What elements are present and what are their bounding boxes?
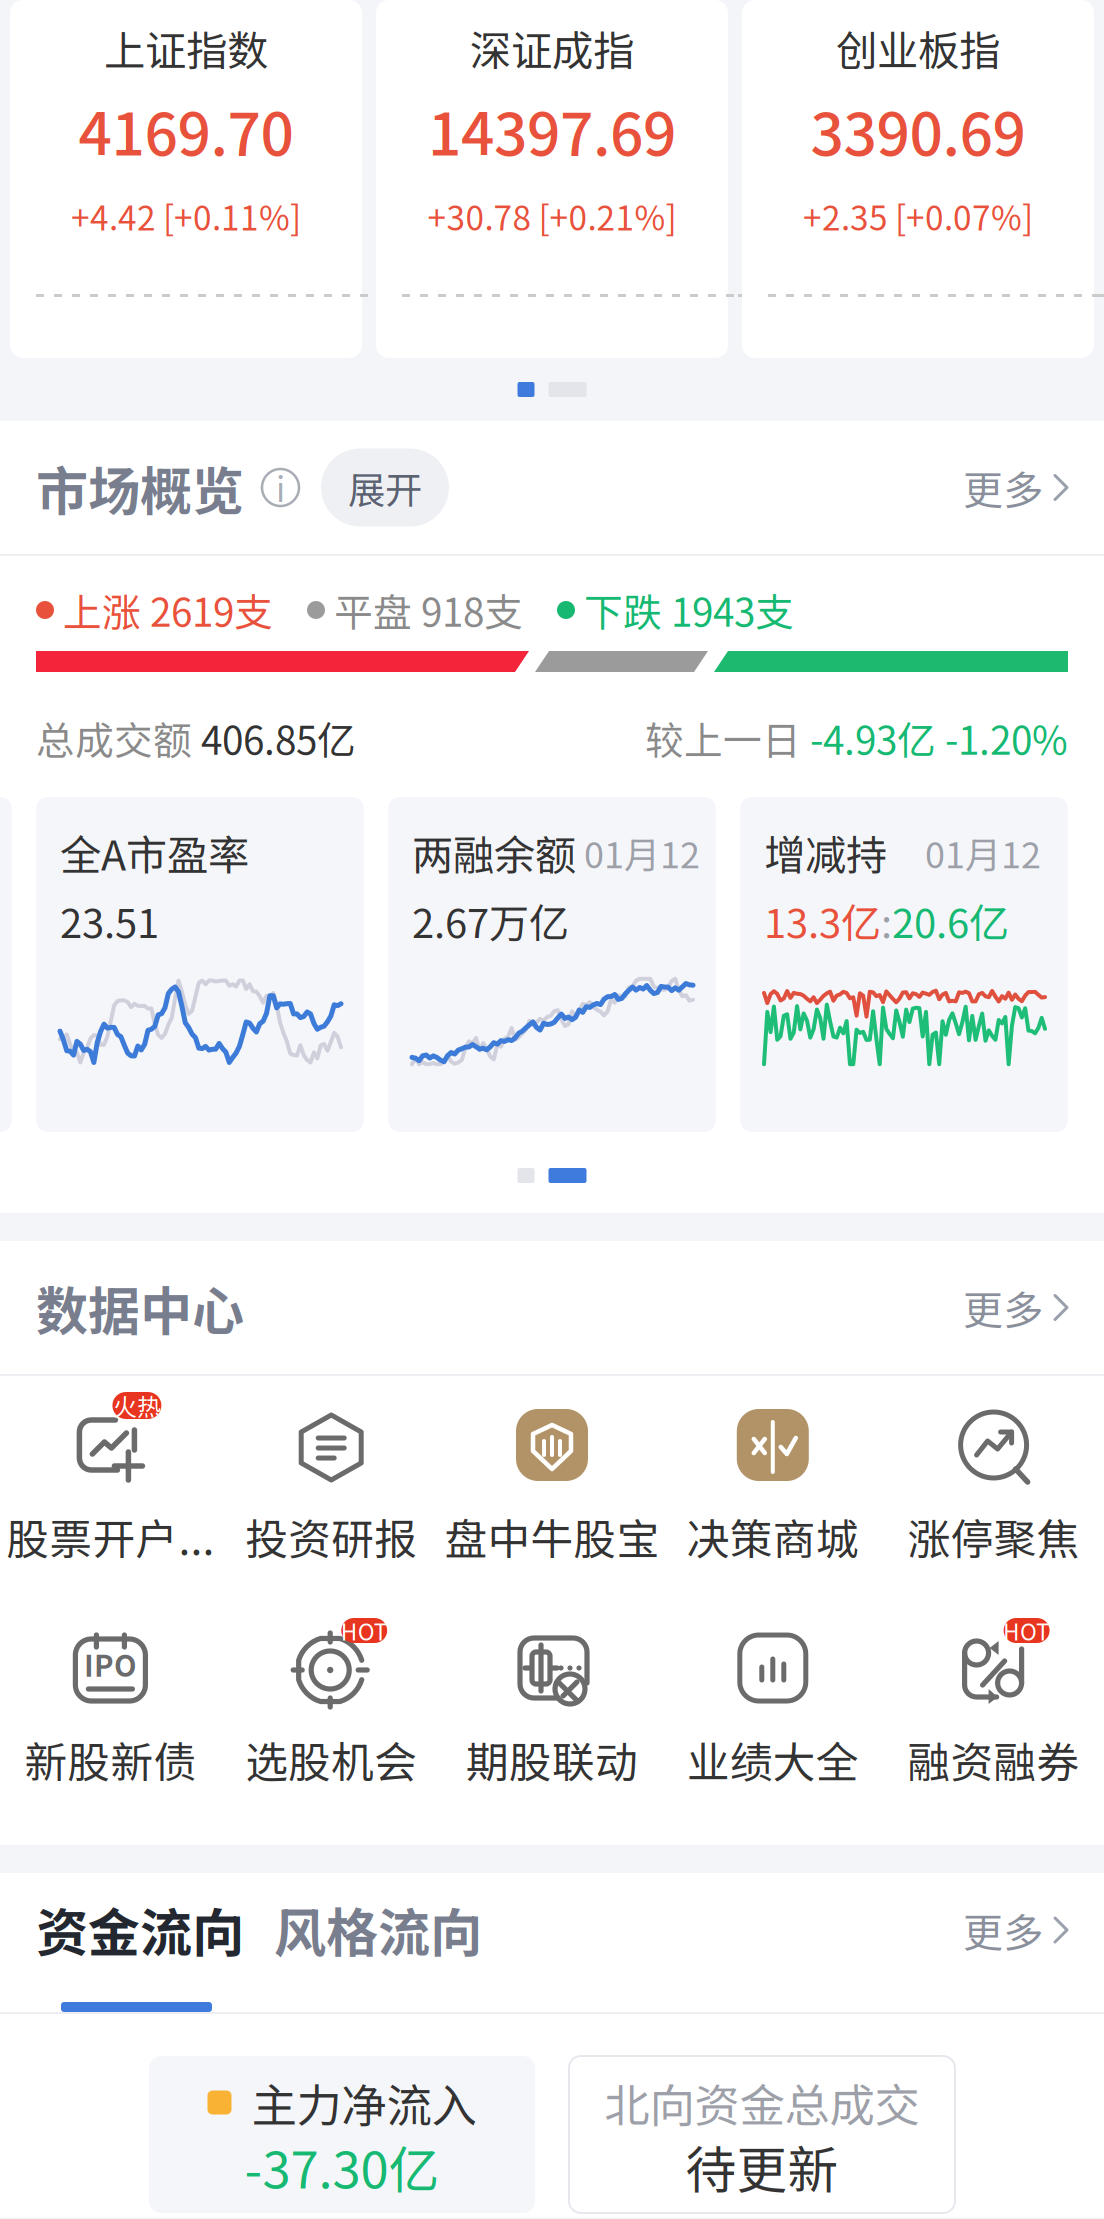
staticText: 投资研报 — [245, 1506, 417, 1567]
staticText: 深证成指 — [470, 18, 634, 78]
staticText: 全A市盈率 — [60, 823, 249, 882]
button[interactable]: 风格流向 — [244, 1901, 482, 1957]
staticText: 资金流向 — [36, 1891, 244, 1967]
button[interactable]: 更多 — [963, 458, 1070, 516]
button[interactable]: 涨停聚焦 — [883, 1408, 1104, 1559]
button[interactable]: 决策商城 — [662, 1408, 883, 1559]
staticText: 增减持 — [764, 823, 887, 882]
staticText: 23.51 — [60, 891, 159, 949]
staticText: HOT — [1003, 1614, 1050, 1647]
staticText: 上涨 2619支 — [54, 582, 273, 638]
staticText: 4169.70 — [78, 87, 293, 172]
staticText: -4.93亿 -1.20% — [810, 710, 1068, 766]
button[interactable]: HOT — [883, 1631, 1104, 1782]
staticText: 较上一日 — [645, 710, 810, 766]
staticText: 总成交额 — [36, 710, 201, 766]
button[interactable]: 期股联动 — [442, 1631, 662, 1782]
staticText: 2.67万亿 — [412, 891, 569, 949]
staticText: HOT — [341, 1614, 388, 1647]
button[interactable]: IPO — [0, 1631, 221, 1782]
staticText: i — [276, 463, 285, 512]
staticText: 股票开户... — [6, 1506, 214, 1567]
button[interactable]: 更多 — [963, 1278, 1070, 1336]
staticText: 01月12 — [925, 826, 1041, 878]
staticText: +2.35 [+0.07%] — [803, 192, 1033, 240]
staticText: 下跌 1943支 — [575, 582, 794, 638]
staticText: 展开 — [348, 460, 422, 515]
staticText: 待更新 — [685, 2130, 838, 2203]
staticText: 更多 — [963, 1278, 1043, 1336]
button[interactable]: 创业板指 — [742, 0, 1094, 358]
staticText: 3390.69 — [810, 87, 1025, 172]
staticText: 盘中牛股宝 — [444, 1506, 659, 1567]
staticText: 上证指数 — [104, 18, 268, 78]
button[interactable]: 投资研报 — [221, 1408, 442, 1559]
staticText: +4.42 [+0.11%] — [71, 192, 301, 240]
staticText: 风格流向 — [274, 1891, 482, 1967]
button[interactable]: 北向资金总成交 — [569, 2056, 955, 2213]
staticText: 北向资金总成交 — [604, 2070, 919, 2135]
staticText: 01月12 — [584, 826, 700, 878]
staticText: 平盘 918支 — [325, 582, 523, 638]
staticText: 更多 — [963, 1901, 1043, 1959]
staticText: 创业板指 — [836, 18, 1000, 78]
staticText: IPO — [84, 1643, 137, 1685]
staticText: 数据中心 — [36, 1270, 244, 1345]
staticText: 市场概览 — [36, 450, 244, 525]
staticText: 选股机会 — [245, 1729, 417, 1790]
button[interactable]: 上证指数 — [10, 0, 362, 358]
button[interactable]: 火热 — [0, 1408, 221, 1559]
staticText: 两融余额 — [412, 823, 576, 882]
button[interactable]: 业绩大全 — [662, 1631, 883, 1782]
staticText: 新股新债 — [24, 1729, 196, 1790]
staticText: 涨停聚焦 — [908, 1506, 1080, 1567]
staticText: 13.3亿 — [764, 891, 881, 949]
staticText: 决策商城 — [687, 1506, 859, 1567]
staticText: 融资融券 — [908, 1729, 1080, 1790]
button[interactable]: 主力净流入 — [149, 2056, 535, 2213]
staticText: -37.30亿 — [244, 2130, 439, 2203]
staticText: 业绩大全 — [687, 1729, 859, 1790]
staticText: 406.85亿 — [201, 710, 356, 766]
staticText: : — [881, 891, 892, 949]
button[interactable]: HOT — [221, 1631, 442, 1782]
staticText: 20.6亿 — [892, 891, 1009, 949]
button[interactable]: 深证成指 — [376, 0, 728, 358]
staticText: 更多 — [963, 458, 1043, 516]
button[interactable]: 资金流向 — [36, 1901, 244, 1957]
staticText: +30.78 [+0.21%] — [427, 192, 676, 240]
button[interactable]: 展开 — [321, 448, 449, 527]
staticText: 火热 — [113, 1388, 161, 1423]
staticText: 期股联动 — [466, 1729, 638, 1790]
button[interactable]: 盘中牛股宝 — [442, 1408, 662, 1559]
button[interactable]: 更多 — [963, 1901, 1070, 1951]
staticText: 主力净流入 — [231, 2070, 476, 2135]
staticText: 14397.69 — [428, 87, 676, 172]
